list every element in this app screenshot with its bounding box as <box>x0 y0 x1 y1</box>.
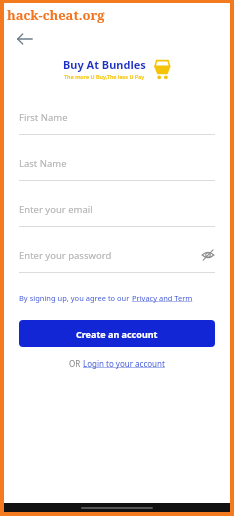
staticText: Enter your password <box>19 249 112 262</box>
button[interactable]: Enter your email <box>4 192 230 238</box>
staticText: By signing up, you agree to our <box>19 293 132 303</box>
staticText: Create an account <box>76 328 158 340</box>
staticText: Enter your email <box>19 203 93 216</box>
button[interactable]: Create an account <box>19 320 215 347</box>
button[interactable]: Back <box>12 26 38 52</box>
button[interactable]: Login to your account <box>83 358 165 369</box>
button[interactable]: Last Name <box>4 146 230 192</box>
staticText: The more U Buy,The less U Pay <box>64 73 145 80</box>
button[interactable]: By signing up, you agree to our <box>19 293 215 303</box>
button[interactable]: Enter your password <box>4 238 230 284</box>
staticText: Login to your account <box>83 358 165 369</box>
staticText: Privacy and Term <box>132 293 193 303</box>
staticText: OR <box>69 358 83 369</box>
button[interactable]: Show password <box>201 248 215 262</box>
staticText: Last Name <box>19 157 67 170</box>
staticText: Buy At Bundles <box>63 57 146 72</box>
staticText: hack-cheat.org <box>7 6 105 24</box>
button[interactable]: First Name <box>4 100 230 146</box>
staticText: First Name <box>19 111 68 124</box>
